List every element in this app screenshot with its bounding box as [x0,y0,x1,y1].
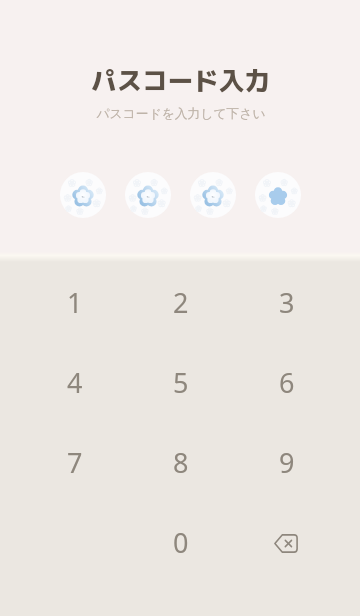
staticText: 7 [67,444,83,481]
button[interactable]: 9 [255,430,319,494]
button[interactable]: 2 [149,270,213,334]
staticText: 8 [173,444,189,481]
staticText: 5 [173,364,189,401]
button[interactable]: Digit empty [190,172,236,218]
button[interactable]: 5 [149,350,213,414]
button[interactable]: Digit empty [125,172,171,218]
staticText: パスコード入力 [91,63,270,99]
button[interactable]: 7 [43,430,107,494]
staticText: 3 [279,284,295,321]
button[interactable]: Digit empty [60,172,106,218]
button[interactable]: 3 [255,270,319,334]
staticText: パスコードを入力して下さい [96,106,266,122]
staticText: 4 [67,364,83,401]
button[interactable]: 1 [43,270,107,334]
button[interactable]: 6 [255,350,319,414]
staticText: 0 [173,524,189,561]
staticText: 1 [67,284,83,321]
button[interactable]: Backspace [255,510,319,574]
staticText: 9 [279,444,295,481]
button[interactable]: Digit entered [255,172,301,218]
button[interactable]: 8 [149,430,213,494]
button[interactable]: 4 [43,350,107,414]
staticText: 6 [279,364,295,401]
staticText: 2 [173,284,189,321]
button[interactable]: 0 [149,510,213,574]
